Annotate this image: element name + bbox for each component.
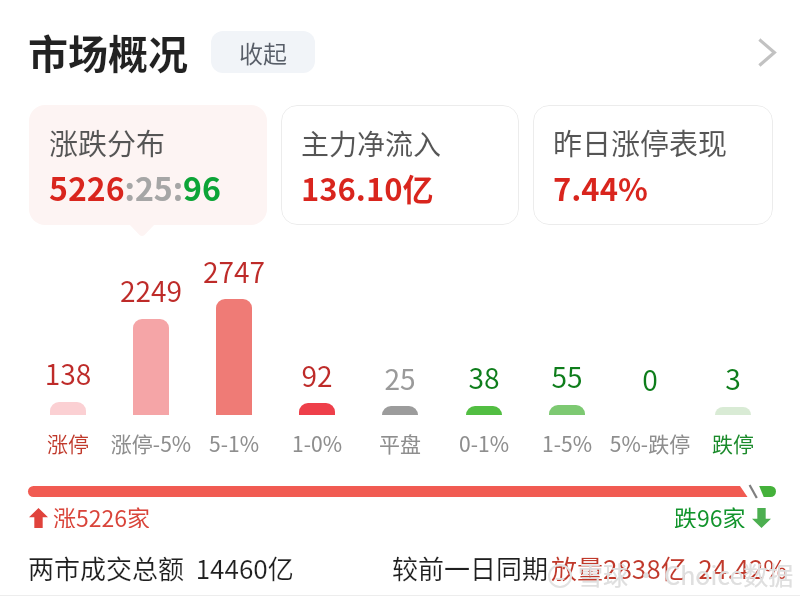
staticText: 1-5% bbox=[515, 428, 619, 458]
button[interactable]: 1-5% bbox=[515, 429, 619, 461]
button[interactable]: 5%-跌停 bbox=[598, 429, 702, 461]
button[interactable]: 跌96家 bbox=[600, 504, 774, 532]
staticText: 5%-跌停 bbox=[598, 428, 702, 458]
staticText: 5-1% bbox=[182, 428, 286, 458]
button[interactable]: 5-1% bbox=[182, 429, 286, 461]
staticText: 7.44% bbox=[553, 165, 648, 210]
staticText: 5226:25:96 bbox=[49, 164, 221, 210]
staticText: 涨停-5% bbox=[99, 428, 203, 458]
button[interactable] bbox=[281, 105, 519, 225]
button[interactable]: 查看更多 bbox=[741, 26, 793, 78]
button[interactable]: 0-1% bbox=[432, 429, 536, 461]
button[interactable]: 平盘 bbox=[348, 429, 452, 461]
staticText: 涨停 bbox=[16, 428, 120, 458]
button[interactable]: 涨停-5% bbox=[99, 429, 203, 461]
staticText: 2249 bbox=[103, 270, 199, 311]
staticText: 25 bbox=[352, 358, 448, 399]
staticText: 0 bbox=[602, 359, 698, 400]
staticText: 涨5226家 bbox=[53, 500, 151, 528]
button[interactable]: 收起 bbox=[211, 31, 315, 73]
staticText: 较前一日同期 bbox=[392, 549, 549, 587]
staticText: 放量2838亿 24.42% bbox=[551, 549, 788, 587]
button[interactable] bbox=[533, 105, 773, 225]
staticText: 两市成交总额 14460亿 bbox=[28, 549, 294, 587]
staticText: 136.10亿 bbox=[301, 165, 434, 210]
button[interactable] bbox=[29, 105, 267, 225]
staticText: 跌96家 bbox=[674, 500, 746, 528]
staticText: 市场概况 bbox=[28, 23, 188, 79]
staticText: 涨跌分布 bbox=[49, 121, 166, 163]
button[interactable]: 1-0% bbox=[265, 429, 369, 461]
staticText: 38 bbox=[436, 357, 532, 398]
button[interactable]: 涨停 bbox=[16, 429, 120, 461]
staticText: 收起 bbox=[239, 35, 287, 70]
button[interactable]: 跌停 bbox=[681, 429, 785, 461]
staticText: 92 bbox=[269, 355, 365, 396]
button[interactable]: 市场概况 bbox=[27, 24, 191, 80]
staticText: 2747 bbox=[186, 251, 282, 292]
staticText: 1-0% bbox=[265, 428, 369, 458]
staticText: 138 bbox=[20, 353, 116, 394]
staticText: 主力净流入 bbox=[301, 123, 442, 164]
staticText: 昨日涨停表现 bbox=[553, 121, 728, 163]
staticText: 0-1% bbox=[432, 428, 536, 458]
staticText: 55 bbox=[519, 356, 615, 397]
button[interactable]: 涨5226家 bbox=[26, 504, 196, 532]
staticText: 平盘 bbox=[348, 428, 452, 458]
staticText: 雪球 · Choice数据 bbox=[578, 556, 794, 592]
staticText: 跌停 bbox=[681, 428, 785, 458]
staticText: 3 bbox=[685, 358, 781, 399]
